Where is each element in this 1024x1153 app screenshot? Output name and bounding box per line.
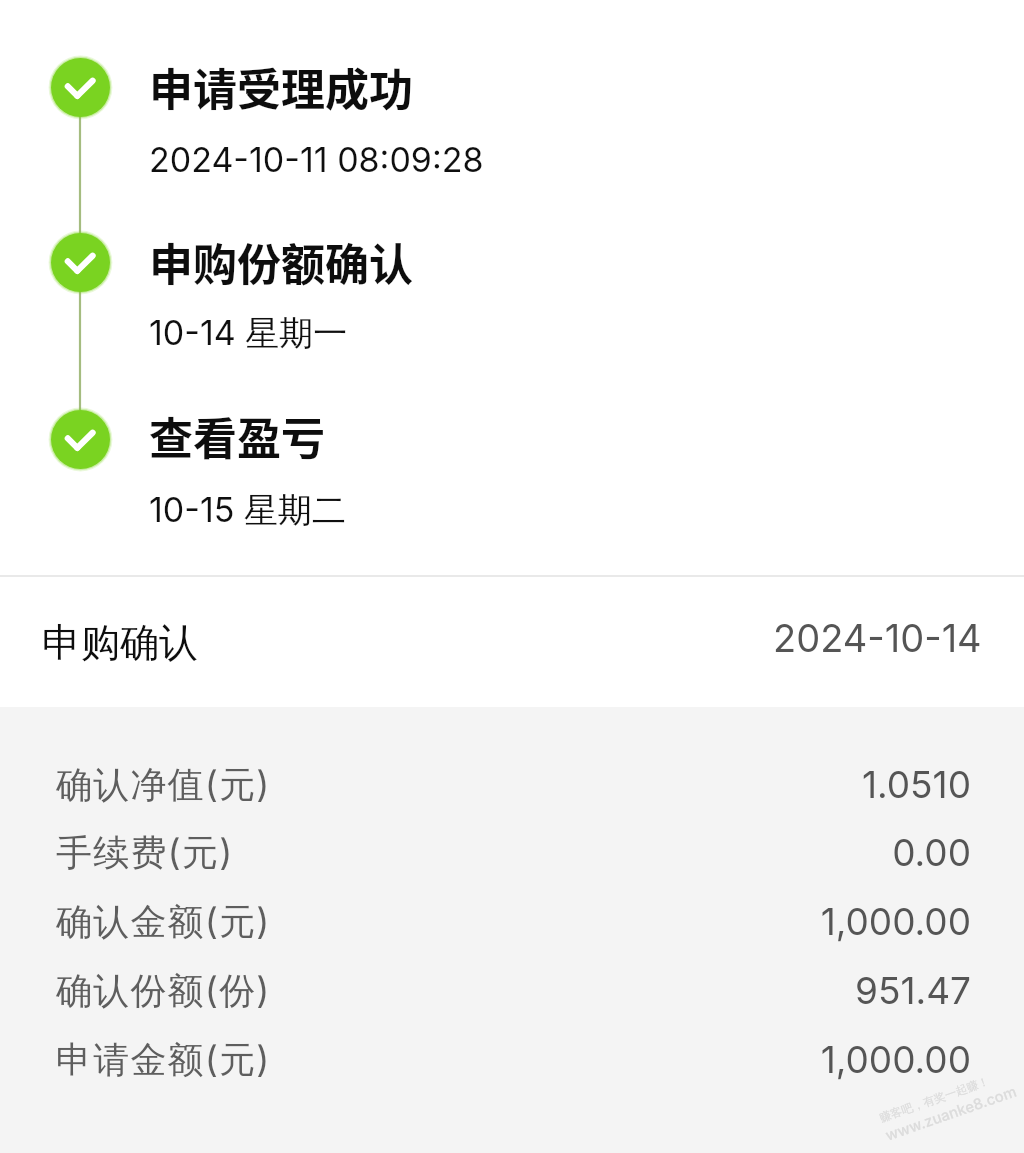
staticText: 申购份额确认: [149, 230, 413, 294]
button[interactable]: [0, 375, 1024, 535]
staticText: 0.00: [892, 830, 971, 875]
staticText: 1,000.00: [820, 1037, 971, 1082]
staticText: 2024-10-11 08:09:28: [149, 139, 484, 180]
other: Step completed: [47, 54, 114, 121]
button[interactable]: 确认金额(元): [0, 887, 1024, 956]
other: Step completed: [47, 229, 114, 296]
staticText: 1,000.00: [820, 899, 971, 944]
button[interactable]: [0, 200, 1024, 350]
button[interactable]: 确认份额(份): [0, 956, 1024, 1025]
button[interactable]: 确认净值(元): [0, 750, 1024, 819]
staticText: 10-14 星期一: [149, 312, 348, 355]
staticText: 查看盈亏: [149, 404, 325, 468]
staticText: 赚客吧，有奖一起赚！: [878, 1074, 991, 1125]
staticText: 确认份额(份): [56, 968, 271, 1014]
staticText: 确认金额(元): [56, 899, 271, 945]
staticText: 申请受理成功: [149, 55, 413, 119]
staticText: 申请金额(元): [56, 1037, 271, 1083]
staticText: www.zuanke8.com: [883, 1081, 1019, 1144]
staticText: 2024-10-14: [773, 615, 982, 661]
button[interactable]: [0, 40, 1024, 190]
staticText: 1.0510: [862, 762, 971, 807]
staticText: 确认净值(元): [56, 762, 271, 808]
staticText: 951.47: [855, 968, 971, 1013]
staticText: 10-15 星期二: [149, 489, 346, 532]
staticText: 手续费(元): [56, 830, 234, 876]
button[interactable]: 申请金额(元): [0, 1025, 1024, 1094]
button[interactable]: 手续费(元): [0, 818, 1024, 887]
staticText: 申购确认: [42, 618, 198, 667]
other: Step completed: [47, 406, 114, 473]
button[interactable]: 申购确认: [0, 577, 1024, 708]
